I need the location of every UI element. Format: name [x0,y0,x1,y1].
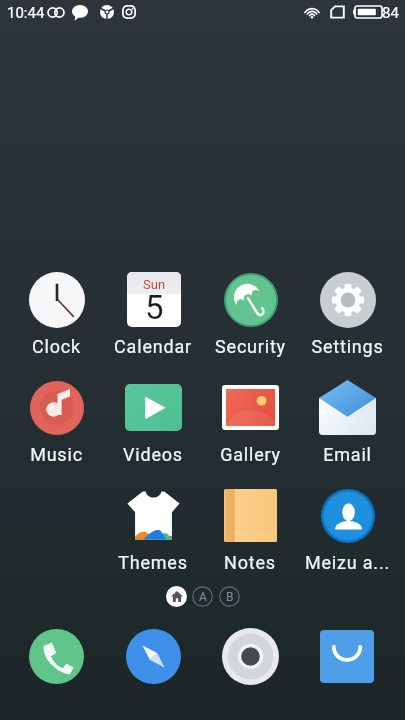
staticText: 10:44 [7,4,45,22]
button[interactable]: Notes [202,482,298,570]
staticText: Security [215,336,286,357]
staticText: Clock [32,336,81,357]
staticText: Settings [311,336,384,357]
button[interactable]: Gallery [202,374,298,462]
button[interactable]: A [192,586,213,607]
button[interactable]: Music [8,374,104,462]
button[interactable]: Browser [119,622,187,690]
button[interactable]: Security [202,266,298,354]
button[interactable]: Home page [166,586,187,607]
staticText: Sun [143,277,166,292]
button[interactable]: Phone [22,622,90,690]
button[interactable]: App Store [313,622,381,690]
staticText: Meizu a... [305,552,390,573]
staticText: Notes [224,552,276,573]
staticText: Themes [118,552,188,573]
staticText: Gallery [220,444,281,465]
button[interactable]: Sun [105,266,201,354]
button[interactable]: Themes [105,482,201,570]
button[interactable]: Settings [299,266,395,354]
staticText: 5 [145,288,164,327]
button[interactable]: Videos [105,374,201,462]
button[interactable]: Email [299,374,395,462]
staticText: Music [30,444,83,465]
button[interactable]: Camera [216,622,284,690]
staticText: 84 [382,4,399,22]
staticText: Calendar [114,336,192,357]
staticText: Email [323,444,372,465]
staticText: Videos [123,444,183,465]
staticText: A [199,590,207,604]
button[interactable]: Meizu a... [299,482,395,570]
staticText: B [226,590,234,604]
button[interactable]: B [219,586,240,607]
button[interactable]: Clock [8,266,104,354]
